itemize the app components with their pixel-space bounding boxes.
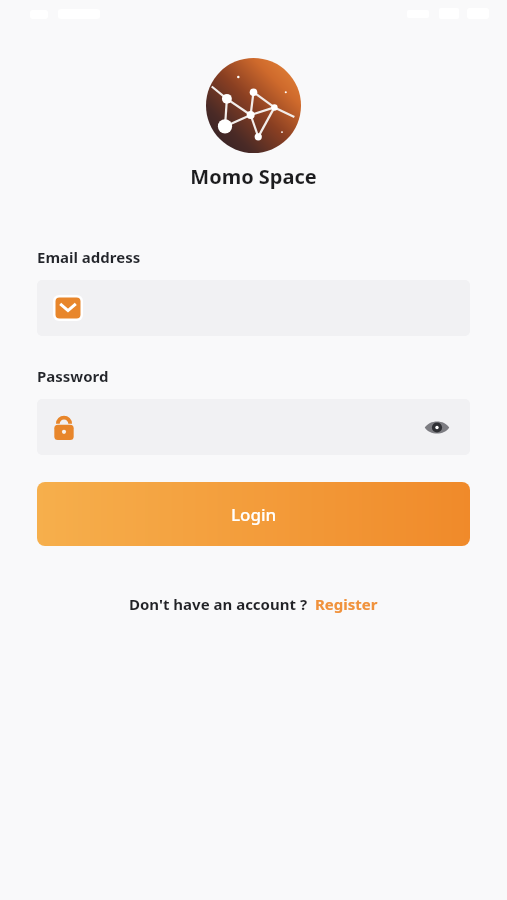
staticText: Password	[37, 366, 109, 386]
button[interactable]	[37, 280, 470, 336]
button[interactable]: Login	[37, 482, 470, 546]
button[interactable]: Show password	[37, 399, 470, 455]
staticText: Momo Space	[190, 163, 317, 190]
button[interactable]: Show password	[420, 410, 454, 444]
button[interactable]: Register	[315, 594, 378, 614]
staticText: Don't have an account ?	[129, 594, 308, 614]
staticText: Login	[231, 503, 277, 526]
staticText: Email address	[37, 247, 141, 267]
staticText: Register	[315, 594, 378, 614]
